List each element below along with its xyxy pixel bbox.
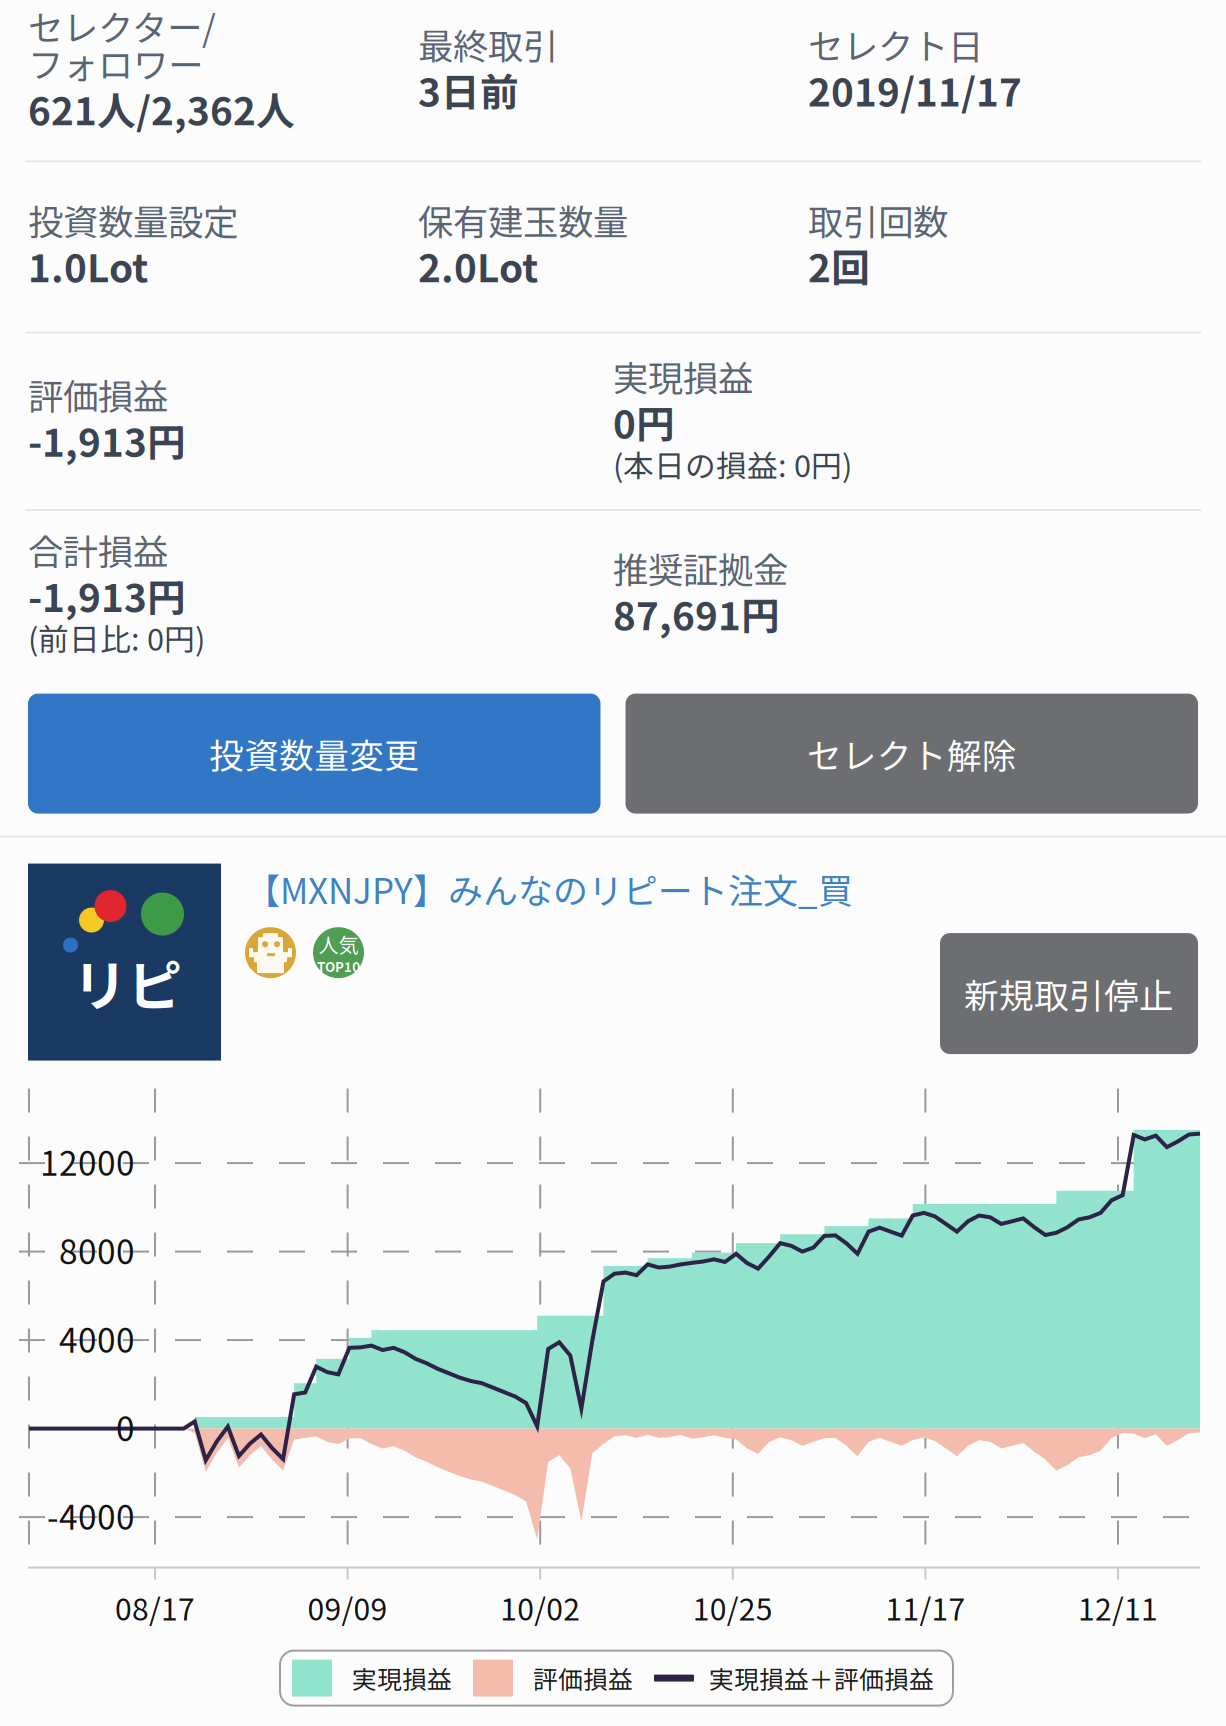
staticText: 0 [116,1403,135,1451]
staticText: 0円 [613,394,675,450]
staticText: フォロワー [28,37,203,88]
staticText: 4000 [59,1314,135,1362]
staticText: (前日比: 0円) [28,615,205,660]
staticText: セレクター/ [28,0,216,51]
staticText: 実現損益 [352,1660,452,1696]
staticText: 最終取引 [418,19,558,70]
staticText: 2回 [808,237,870,293]
staticText: リピ [72,942,182,1022]
staticText: 2019/11/17 [808,62,1022,118]
staticText: 10/25 [693,1586,773,1629]
staticText: 11/17 [885,1586,965,1629]
staticText: 12000 [40,1137,135,1185]
staticText: 1.0Lot [28,237,148,293]
staticText: 09/09 [308,1586,388,1629]
staticText: 合計損益 [28,524,168,575]
staticText: 投資数量設定 [28,194,238,245]
staticText: 取引回数 [808,194,948,245]
button[interactable]: 新規取引停止 [940,933,1198,1054]
staticText: -1,913円 [28,412,186,468]
staticText: TOP10 [317,956,360,976]
staticText: -1,913円 [28,567,186,623]
button[interactable]: 【MXNJPY】みんなのリピート注文_買 [245,864,853,914]
staticText: 推奨証拠金 [613,542,788,593]
staticText: 新規取引停止 [964,968,1174,1019]
staticText: 【MXNJPY】みんなのリピート注文_買 [245,864,853,914]
staticText: -4000 [47,1491,135,1539]
staticText: 3日前 [418,62,519,118]
staticText: 10/02 [500,1586,580,1629]
staticText: 投資数量変更 [209,728,419,779]
staticText: 87,691円 [613,585,780,641]
staticText: 実現損益＋評価損益 [709,1660,934,1696]
staticText: 2.0Lot [418,237,538,293]
button[interactable]: 投資数量変更 [28,694,600,814]
staticText: 保有建玉数量 [418,194,628,245]
staticText: 評価損益 [533,1660,633,1696]
staticText: 評価損益 [28,369,168,420]
staticText: 実現損益 [613,350,753,402]
staticText: 12/11 [1078,1586,1158,1629]
staticText: 621人/2,362人 [28,80,295,136]
staticText: セレクト解除 [807,728,1017,779]
button[interactable]: セレクト解除 [625,694,1198,814]
staticText: 8000 [59,1226,135,1274]
staticText: (本日の損益: 0円) [613,442,852,486]
staticText: 人気 [318,929,358,958]
staticText: セレクト日 [808,19,983,70]
staticText: 08/17 [115,1586,195,1629]
